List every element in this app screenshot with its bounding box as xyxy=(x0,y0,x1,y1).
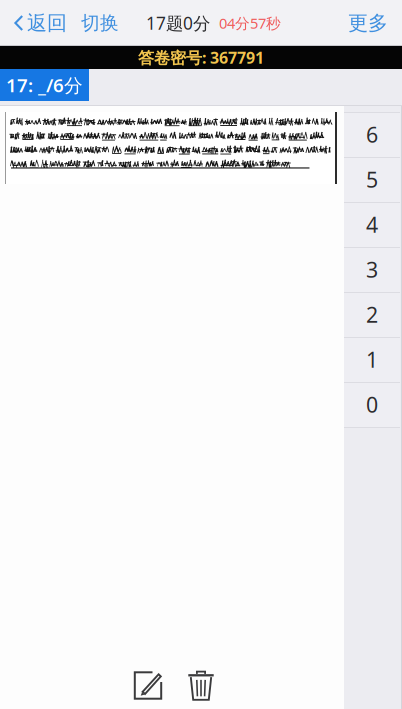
staticText: 17: _/6分 xyxy=(6,73,83,97)
staticText: 返回 xyxy=(27,11,67,35)
button[interactable]: 切换 xyxy=(74,1,126,45)
staticText: 4 xyxy=(366,210,378,239)
staticText: 0 xyxy=(366,390,378,419)
button[interactable]: 0 xyxy=(344,382,400,427)
staticText: 答卷密号: 367791 xyxy=(138,47,264,68)
button[interactable]: 6 xyxy=(344,112,400,157)
staticText: 04分57秒 xyxy=(219,13,281,33)
staticText: 更多 xyxy=(348,11,388,35)
button[interactable]: 更多 xyxy=(348,1,402,45)
button[interactable]: 2 xyxy=(344,292,400,337)
button[interactable]: 1 xyxy=(344,337,400,382)
staticText: 3 xyxy=(366,255,378,284)
button[interactable]: 5 xyxy=(344,157,400,202)
button[interactable]: 返回 xyxy=(0,1,74,45)
button[interactable]: 编辑 xyxy=(119,665,173,707)
staticText: 2 xyxy=(366,300,378,329)
staticText: 5 xyxy=(366,165,378,194)
button[interactable]: 删除 xyxy=(173,665,224,706)
button[interactable]: 4 xyxy=(344,202,400,247)
staticText: 切换 xyxy=(81,11,119,34)
staticText: 6 xyxy=(366,120,378,149)
button[interactable]: 3 xyxy=(344,247,400,292)
staticText: 1 xyxy=(366,345,378,374)
staticText: 17题0分 xyxy=(146,11,210,34)
